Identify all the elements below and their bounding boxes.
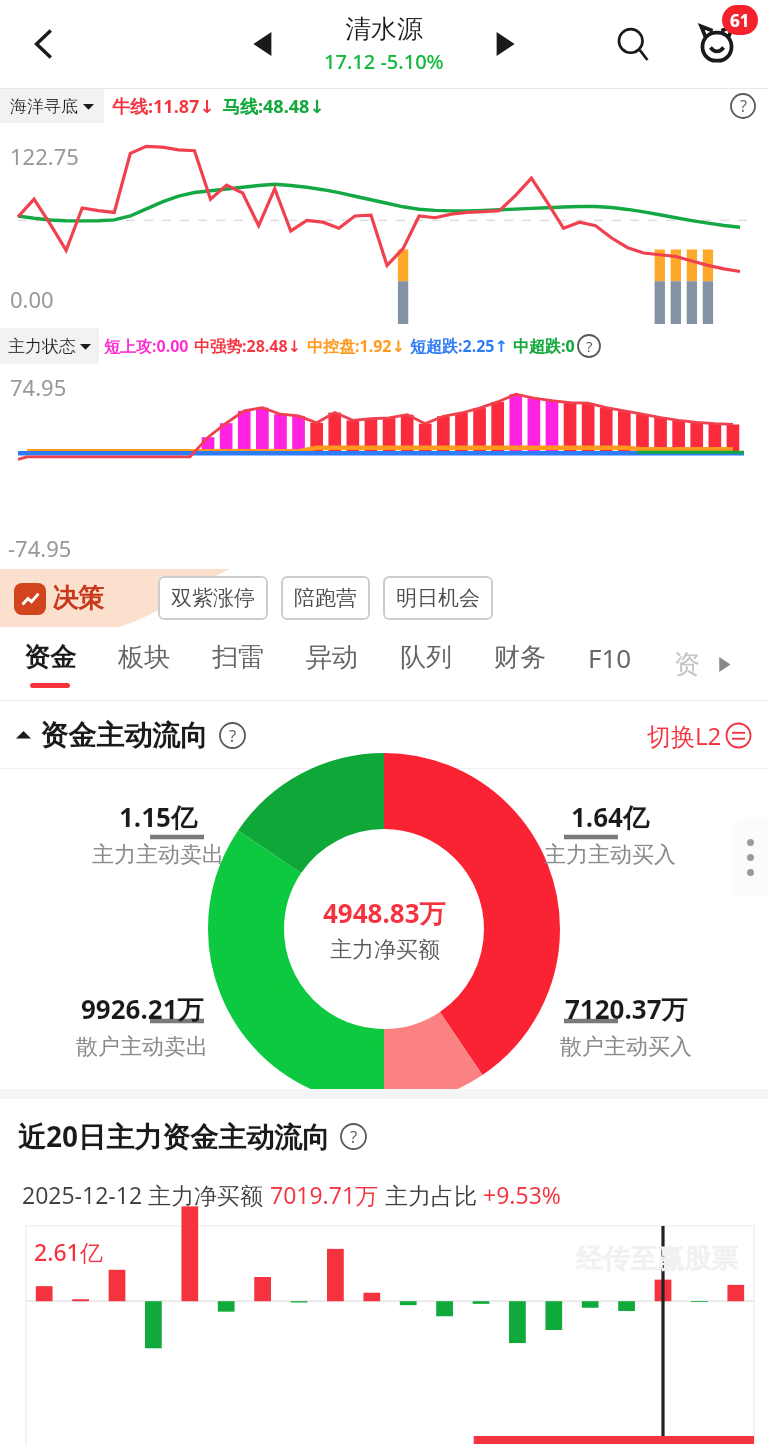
button[interactable]: 双紫涨停 xyxy=(171,576,255,620)
button[interactable]: 财务 xyxy=(494,627,546,701)
staticText: 清水源 xyxy=(345,13,423,46)
staticText: 队列 xyxy=(400,641,452,674)
staticText: 1.64亿 xyxy=(571,799,649,835)
staticText: 陪跑营 xyxy=(294,585,357,611)
staticText: F10 xyxy=(588,640,632,675)
staticText: 主力主动卖出 xyxy=(92,841,224,869)
button[interactable]: 资金 xyxy=(24,627,76,701)
button[interactable]: Help xyxy=(340,1123,367,1150)
staticText: 决策 xyxy=(52,582,104,615)
staticText: 双紫涨停 xyxy=(171,585,255,611)
staticText: 散户主动卖出 xyxy=(76,1033,208,1061)
button[interactable]: 板块 xyxy=(118,627,170,701)
staticText: 板块 xyxy=(118,641,170,674)
staticText: -74.95 xyxy=(8,533,72,563)
staticText: 短上攻:0.00 xyxy=(104,335,189,357)
staticText: 切换L2 xyxy=(647,719,722,752)
staticText: 短超跌:2.25↑ xyxy=(410,335,508,357)
staticText: ? xyxy=(740,95,747,117)
staticText: 7120.37万 xyxy=(565,991,688,1027)
staticText: 财务 xyxy=(494,641,546,674)
staticText: ? xyxy=(586,336,593,356)
staticText: 7019.71万 xyxy=(270,1179,379,1210)
staticText: 异动 xyxy=(306,641,358,674)
button[interactable]: 异动 xyxy=(306,627,358,701)
staticText: 近20日主力资金主动流向 xyxy=(18,1117,331,1155)
staticText: 经传至赢股票 xyxy=(576,1242,738,1276)
staticText: 牛线:11.87↓ xyxy=(112,94,215,119)
staticText: 中超跌:0 xyxy=(513,335,575,357)
button[interactable]: Assistant xyxy=(682,9,752,79)
staticText: 主力占比 xyxy=(379,1179,483,1210)
button[interactable]: F10 xyxy=(588,627,632,701)
button[interactable]: Help xyxy=(219,722,246,749)
staticText: 61 xyxy=(730,9,750,32)
button[interactable]: 明日机会 xyxy=(396,576,480,620)
button[interactable]: Help xyxy=(730,93,756,119)
button[interactable]: Search xyxy=(602,13,664,75)
staticText: 散户主动买入 xyxy=(560,1033,692,1061)
staticText: ? xyxy=(229,724,237,747)
staticText: 海洋寻底 xyxy=(10,96,78,117)
staticText: 马线:48.48↓ xyxy=(222,94,325,119)
staticText: 资金主动流向 xyxy=(40,718,208,753)
staticText: 主力净买额 xyxy=(330,936,440,964)
button[interactable]: 主力状态 xyxy=(8,328,91,364)
button[interactable]: 近20日主力资金主动流向 xyxy=(18,1117,367,1155)
staticText: 资金 xyxy=(24,641,76,674)
staticText: 17.12 -5.10% xyxy=(324,48,444,75)
button[interactable]: 扫雷 xyxy=(212,627,264,701)
staticText: 2.61亿 xyxy=(34,1236,103,1267)
button[interactable]: 决策 xyxy=(14,582,104,615)
staticText: 74.95 xyxy=(10,372,67,402)
button[interactable]: 切换L2 xyxy=(647,719,752,752)
button[interactable]: 海洋寻底 xyxy=(10,89,94,123)
button[interactable]: Back xyxy=(12,12,76,76)
button[interactable]: Previous stock xyxy=(235,16,291,72)
staticText: 1.15亿 xyxy=(119,799,197,835)
staticText: +9.53% xyxy=(483,1179,561,1210)
staticText: 主力状态 xyxy=(8,336,76,357)
button[interactable]: Help xyxy=(577,334,601,358)
button[interactable]: More options xyxy=(732,818,768,896)
button[interactable]: 资金主动流向 xyxy=(16,718,246,753)
button[interactable]: 队列 xyxy=(400,627,452,701)
staticText: 资 xyxy=(674,648,700,681)
staticText: 2025-12-12 主力净买额 xyxy=(22,1179,270,1210)
button[interactable]: Next stock xyxy=(477,16,533,72)
staticText: 中控盘:1.92↓ xyxy=(307,335,405,357)
button[interactable]: More tabs xyxy=(712,652,736,676)
staticText: 0.00 xyxy=(10,284,54,314)
staticText: 中强势:28.48↓ xyxy=(194,335,302,357)
staticText: 9926.21万 xyxy=(81,991,204,1027)
staticText: 122.75 xyxy=(10,141,79,171)
staticText: 明日机会 xyxy=(396,585,480,611)
staticText: 主力主动买入 xyxy=(544,841,676,869)
staticText: 4948.83万 xyxy=(323,895,446,931)
staticText: ? xyxy=(350,1125,358,1148)
staticText: 扫雷 xyxy=(212,641,264,674)
button[interactable]: 陪跑营 xyxy=(294,576,357,620)
